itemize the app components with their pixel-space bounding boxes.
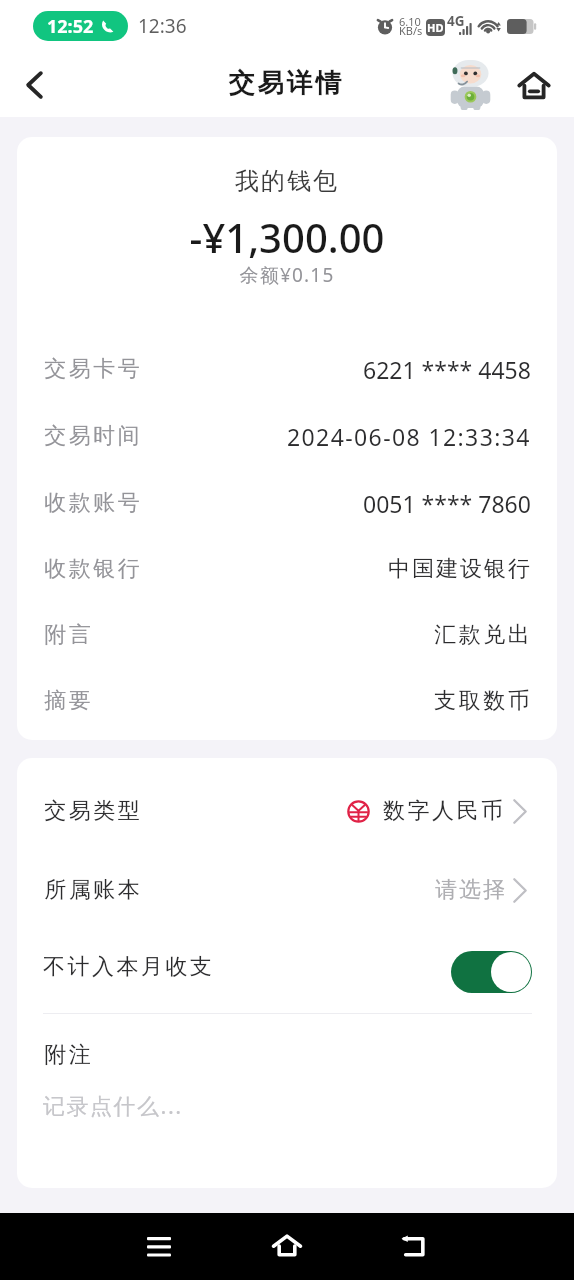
staticText: 6.10 [399,14,421,29]
button[interactable]: 所属账本 [17,862,557,918]
staticText: HD [427,20,444,35]
staticText: 中国建设银行 [387,555,531,583]
staticText: 所属账本 [43,876,141,904]
button[interactable]: Exclude from monthly income and expenses [451,951,532,993]
staticText: 4G [447,12,465,30]
button[interactable]: Home [257,1215,317,1275]
button[interactable]: Recent apps [129,1217,189,1277]
staticText: 不计入本月收支 [43,953,215,981]
staticText: 交易详情 [227,67,343,100]
staticText: 交易类型 [43,797,141,825]
staticText: 附言 [43,621,92,649]
staticText: 0051 **** 7860 [363,488,531,519]
staticText: 数字人民币 [383,797,506,825]
staticText: 收款账号 [43,489,141,517]
staticText: 附注 [43,1041,92,1069]
button[interactable]: Home [510,55,557,115]
staticText: 6221 **** 4458 [363,354,531,385]
button[interactable]: Back [9,59,61,111]
button[interactable]: Customer service assistant [448,59,493,110]
staticText: 汇款兑出 [433,621,531,649]
staticText: 请选择 [434,876,506,904]
staticText: 记录点什么... [43,1090,183,1120]
staticText: 我的钱包 [17,166,557,196]
staticText: 交易时间 [43,422,141,450]
staticText: 摘要 [43,687,92,715]
staticText: 12:52 [47,14,94,39]
button[interactable]: Back [384,1216,444,1276]
staticText: -¥1,300.00 [17,210,557,264]
staticText: 交易卡号 [43,355,141,383]
staticText: 2024-06-08 12:33:34 [287,421,531,452]
staticText: KB/s [399,23,423,38]
staticText: 支取数币 [433,687,531,715]
staticText: 余额¥0.15 [17,262,557,288]
staticText: 收款银行 [43,555,141,583]
staticText: 12:36 [138,13,187,39]
button[interactable]: 交易类型 [17,783,557,839]
